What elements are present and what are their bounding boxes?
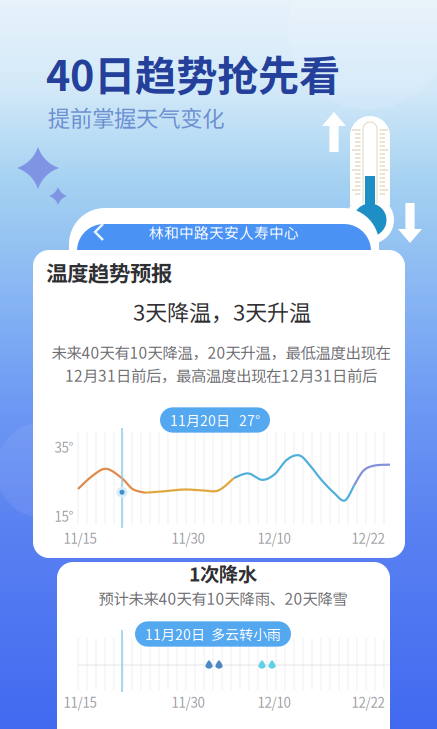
staticText: 温度趋势预报 (46, 257, 172, 287)
staticText: 12/10 (257, 528, 290, 548)
staticText: 35° (54, 437, 73, 457)
staticText: 未来40天有10天降温，20天升温，最低温度出现在 (51, 341, 390, 363)
staticText: 11月20日 27° (170, 410, 260, 430)
button[interactable]: 林和中路天安人寿中心 (139, 215, 309, 249)
staticText: 11/15 (63, 528, 96, 548)
staticText: 12/22 (351, 528, 384, 548)
staticText: 11月20日 多云转小雨 (145, 624, 281, 644)
staticText: 提前掌握天气变化 (48, 101, 224, 133)
staticText: 11/15 (63, 692, 96, 712)
staticText: 11/30 (171, 692, 204, 712)
staticText: 12/10 (257, 692, 290, 712)
staticText: 12月31日前后，最高温度出现在12月31日前后 (65, 364, 377, 386)
button[interactable]: Back (82, 215, 116, 249)
staticText: 林和中路天安人寿中心 (149, 221, 299, 243)
staticText: 1次降水 (189, 559, 257, 587)
staticText: 40日趋势抢先看 (46, 43, 340, 103)
staticText: 12/22 (351, 692, 384, 712)
staticText: 11/30 (171, 528, 204, 548)
staticText: 预计未来40天有10天降雨、20天降雪 (98, 587, 347, 609)
staticText: 3天降温，3天升温 (133, 295, 311, 327)
staticText: 15° (54, 506, 73, 526)
